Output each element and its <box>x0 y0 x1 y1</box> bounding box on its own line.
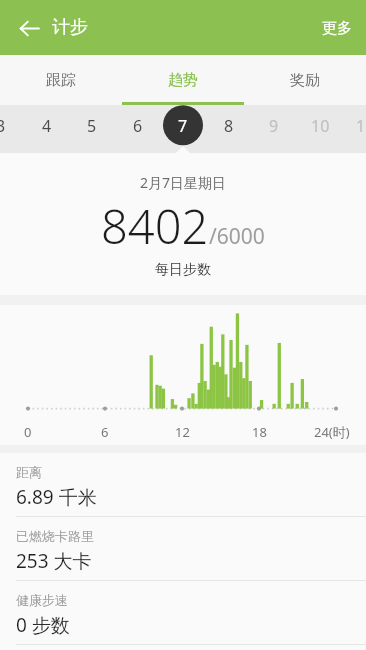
staticText: 2月7日星期日 <box>140 173 227 192</box>
staticText: 18 <box>252 423 267 441</box>
button[interactable]: 9 <box>251 105 297 153</box>
staticText: 9 <box>269 115 279 137</box>
staticText: 已燃烧卡路里 <box>16 528 94 544</box>
button[interactable]: 更多 <box>308 5 366 51</box>
staticText: /6000 <box>209 222 265 251</box>
button[interactable]: 6 <box>115 105 161 153</box>
button[interactable]: 10 <box>297 105 343 153</box>
button[interactable]: 4 <box>24 105 70 153</box>
staticText: 更多 <box>322 19 352 38</box>
staticText: 11 <box>356 115 366 137</box>
staticText: 6.89 千米 <box>16 484 97 510</box>
staticText: 计步 <box>52 16 88 39</box>
staticText: 24(时) <box>314 423 350 441</box>
staticText: 8 <box>224 115 234 137</box>
staticText: 7 <box>178 115 188 137</box>
button[interactable]: 3 <box>0 105 24 153</box>
button[interactable]: 跟踪 <box>0 55 122 105</box>
button[interactable]: 11 <box>342 105 366 153</box>
button[interactable]: 7 <box>160 105 206 153</box>
staticText: 8402 <box>101 194 209 258</box>
staticText: 健康步速 <box>16 592 68 608</box>
staticText: 253 大卡 <box>16 548 92 574</box>
button[interactable]: 趋势 <box>122 55 244 105</box>
staticText: 每日步数 <box>155 261 211 279</box>
staticText: 奖励 <box>290 71 320 90</box>
staticText: 0 <box>24 423 32 441</box>
button[interactable]: 距离 <box>0 453 366 516</box>
staticText: 4 <box>42 115 52 137</box>
button[interactable]: Back <box>6 5 52 51</box>
button[interactable]: 5 <box>69 105 115 153</box>
staticText: 跟踪 <box>46 71 76 90</box>
button[interactable]: 已燃烧卡路里 <box>0 517 366 580</box>
staticText: 6 <box>133 115 143 137</box>
staticText: 3 <box>0 115 6 137</box>
staticText: 12 <box>175 423 190 441</box>
staticText: 趋势 <box>168 71 198 90</box>
button[interactable]: 健康步速 <box>0 581 366 644</box>
button[interactable]: 奖励 <box>244 55 366 105</box>
staticText: 0 步数 <box>16 612 70 638</box>
staticText: 距离 <box>16 464 42 480</box>
staticText: 10 <box>311 115 330 137</box>
staticText: 6 <box>101 423 109 441</box>
button[interactable]: 8 <box>206 105 252 153</box>
staticText: 5 <box>87 115 97 137</box>
